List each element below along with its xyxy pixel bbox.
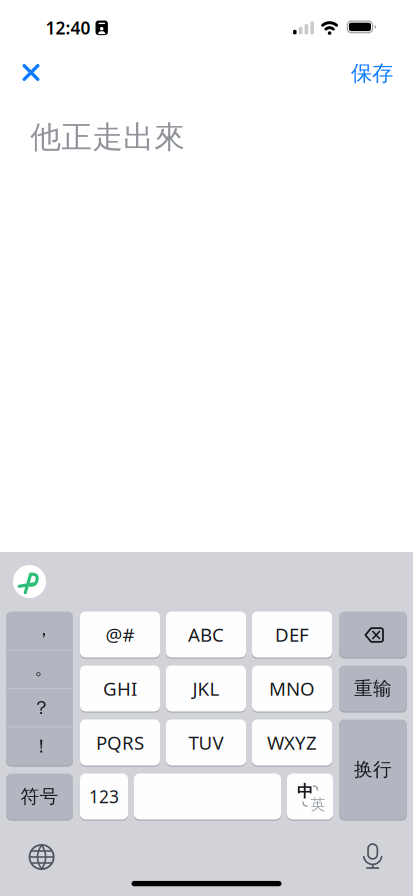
button[interactable]: ABC: [166, 611, 246, 657]
button[interactable]: 。: [6, 650, 73, 688]
button[interactable]: 中: [287, 773, 333, 819]
staticText: TUV: [188, 730, 223, 755]
staticText: 重输: [354, 677, 392, 700]
button[interactable]: [22, 64, 40, 81]
button[interactable]: GHI: [80, 665, 160, 711]
staticText: JKL: [192, 676, 219, 701]
button[interactable]: [339, 611, 407, 657]
staticText: PQRS: [96, 730, 144, 755]
button[interactable]: WXYZ: [252, 719, 332, 765]
staticText: 123: [89, 785, 119, 808]
button[interactable]: ，: [6, 611, 73, 650]
button[interactable]: [363, 843, 382, 869]
staticText: 英: [310, 795, 325, 813]
button[interactable]: TUV: [166, 719, 246, 765]
button[interactable]: 123: [80, 773, 128, 819]
staticText: ！: [32, 735, 51, 758]
button[interactable]: [13, 565, 46, 598]
button[interactable]: 保存: [351, 60, 393, 87]
button[interactable]: ？: [6, 688, 73, 727]
button[interactable]: PQRS: [80, 719, 160, 765]
staticText: 符号: [20, 785, 58, 808]
staticText: DEF: [275, 622, 309, 647]
button[interactable]: @#: [80, 611, 160, 657]
button[interactable]: [134, 773, 281, 819]
staticText: 保存: [351, 60, 393, 87]
button[interactable]: MNO: [252, 665, 332, 711]
button[interactable]: [29, 844, 55, 870]
button[interactable]: ！: [6, 727, 73, 765]
button[interactable]: JKL: [166, 665, 246, 711]
staticText: WXYZ: [267, 730, 317, 755]
staticText: 中: [297, 782, 313, 801]
staticText: @#: [105, 622, 134, 647]
button[interactable]: 重输: [339, 665, 407, 711]
staticText: 他正走出來: [30, 118, 185, 156]
staticText: 换行: [354, 758, 392, 781]
button[interactable]: DEF: [252, 611, 332, 657]
staticText: GHI: [103, 676, 137, 701]
staticText: ，: [34, 618, 53, 640]
staticText: 12:40: [45, 16, 90, 39]
button[interactable]: 换行: [339, 719, 407, 819]
staticText: MNO: [269, 676, 315, 701]
button[interactable]: 符号: [6, 773, 73, 819]
staticText: ABC: [188, 622, 224, 647]
staticText: ？: [32, 696, 51, 719]
staticText: 。: [34, 657, 53, 679]
